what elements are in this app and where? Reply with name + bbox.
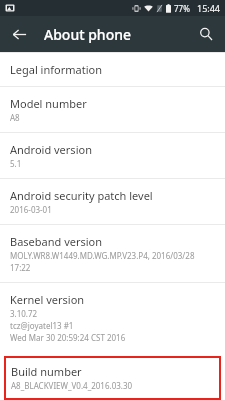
staticText: Kernel version [10,292,85,307]
staticText: A8_BLACKVIEW_V0.4_2016.03.30 [11,380,133,391]
staticText: Wed Mar 30 20:59:24 CST 2016 [10,332,126,343]
staticText: 77% [174,3,190,14]
button[interactable]: Android security patch level [0,179,225,224]
staticText: Android version [10,142,92,157]
button[interactable]: Model number [0,87,225,132]
staticText: 3.10.72 [10,308,38,319]
button[interactable]: Build number [4,356,221,400]
staticText: 17:22 [10,262,31,273]
staticText: Legal information [10,62,102,77]
staticText: 15:44 [197,2,221,14]
button[interactable]: Back [6,21,32,47]
staticText: MOLY.WR8.W1449.MD.WG.MP.V23.P4, 2016/03/… [10,250,195,261]
staticText: About phone [44,25,132,44]
button[interactable]: Android version [0,133,225,178]
staticText: A8 [10,112,20,123]
staticText: tcz@joyatel13 #1 [10,320,74,331]
button[interactable]: Search [193,21,219,47]
button[interactable]: Kernel version [0,283,225,352]
staticText: Build number [11,364,82,379]
staticText: Android security patch level [10,188,153,203]
button[interactable]: Legal information [0,53,225,86]
staticText: 5.1 [10,158,22,169]
staticText: Baseband version [10,234,103,249]
staticText: Model number [10,96,87,111]
button[interactable]: Baseband version [0,225,225,282]
staticText: 2016-03-01 [10,204,52,215]
